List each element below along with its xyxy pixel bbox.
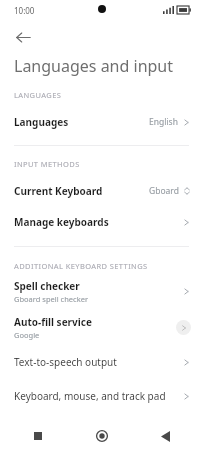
staticText: Manage keyboards: [14, 215, 109, 229]
button[interactable]: Back: [8, 22, 38, 52]
staticText: English: [149, 116, 178, 128]
staticText: INPUT METHODS: [14, 159, 80, 169]
staticText: 10:00: [14, 5, 35, 16]
staticText: Gboard spell checker: [14, 294, 88, 304]
staticText: Google: [14, 330, 40, 340]
button[interactable]: Languages: [0, 107, 203, 137]
button[interactable]: Text-to-speech output: [0, 347, 203, 377]
button[interactable]: Auto-fill service: [0, 313, 203, 341]
staticText: LANGUAGES: [14, 90, 62, 100]
staticText: Languages: [14, 115, 69, 129]
button[interactable]: Home: [90, 424, 114, 448]
button[interactable]: Back: [153, 424, 177, 448]
staticText: Languages and input: [14, 55, 174, 77]
button[interactable]: Current Keyboard: [0, 176, 203, 206]
staticText: ADDITIONAL KEYBOARD SETTINGS: [14, 261, 148, 271]
button[interactable]: Manage keyboards: [0, 207, 203, 237]
staticText: Gboard: [149, 185, 179, 197]
button[interactable]: Spell checker: [0, 277, 203, 305]
staticText: Keyboard, mouse, and track pad: [14, 389, 166, 403]
staticText: Text-to-speech output: [14, 355, 117, 369]
button[interactable]: Recent apps: [26, 424, 50, 448]
button[interactable]: Keyboard, mouse, and track pad: [0, 381, 203, 411]
staticText: Spell checker: [14, 279, 80, 293]
staticText: Current Keyboard: [14, 184, 103, 198]
staticText: Auto-fill service: [14, 315, 92, 329]
